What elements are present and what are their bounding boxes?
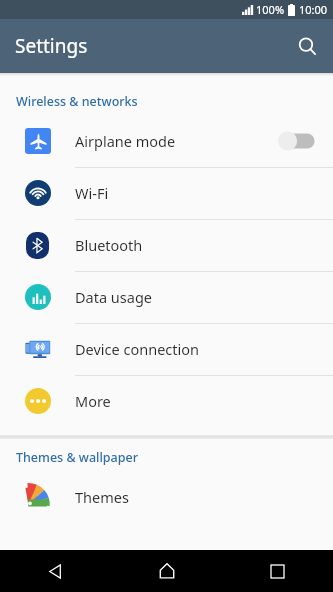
button[interactable]: Back	[0, 550, 111, 592]
staticText: 100%	[256, 2, 285, 17]
button[interactable]: More	[0, 375, 333, 427]
staticText: More	[75, 391, 333, 411]
button[interactable]: Search	[287, 26, 327, 66]
staticText: Themes	[75, 487, 333, 507]
button[interactable]: Device connection	[0, 323, 333, 375]
button[interactable]: Themes	[0, 471, 333, 523]
button[interactable]	[277, 129, 317, 153]
staticText: Wireless & networks	[16, 93, 138, 110]
button[interactable]: Airplane mode	[0, 115, 333, 167]
button[interactable]: Data usage	[0, 271, 333, 323]
staticText: Device connection	[75, 339, 333, 359]
button[interactable]: Bluetooth	[0, 219, 333, 271]
button[interactable]: Home	[111, 550, 222, 592]
staticText: Data usage	[75, 287, 333, 307]
staticText: Bluetooth	[75, 235, 333, 255]
staticText: Settings	[15, 33, 88, 59]
staticText: 10:00	[299, 2, 328, 17]
button[interactable]: Wi-Fi	[0, 167, 333, 219]
staticText: Themes & wallpaper	[16, 449, 138, 466]
button[interactable]: Recent apps	[222, 550, 333, 592]
staticText: Airplane mode	[75, 131, 277, 151]
staticText: Wi-Fi	[75, 183, 333, 203]
